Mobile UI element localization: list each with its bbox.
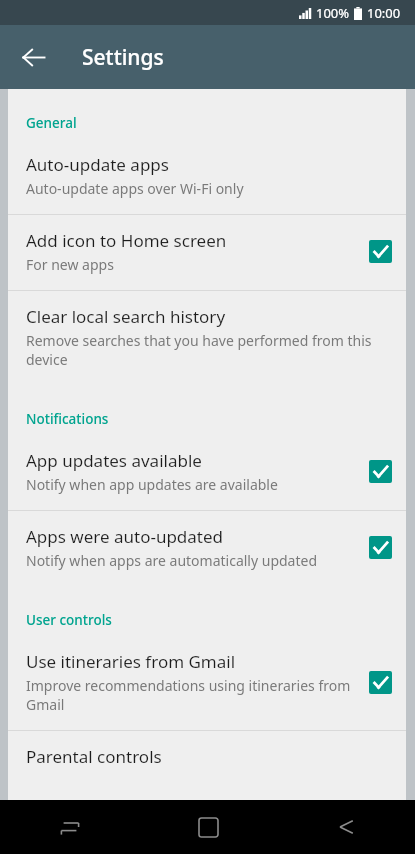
staticText: Auto-update apps	[26, 153, 169, 176]
staticText: Use itineraries from Gmail	[26, 650, 236, 673]
staticText: Settings	[82, 43, 164, 72]
staticText: Parental controls	[26, 745, 162, 768]
staticText: Add icon to Home screen	[26, 229, 227, 252]
staticText: For new apps	[26, 255, 114, 274]
staticText: User controls	[26, 611, 112, 629]
button[interactable]: Clear local search history	[8, 291, 406, 385]
button[interactable]: Auto-update apps	[8, 139, 406, 214]
button[interactable]: Back	[11, 35, 55, 79]
button[interactable]: Recents	[0, 800, 139, 854]
staticText: Notify when apps are automatically updat…	[26, 551, 318, 570]
staticText: Remove searches that you have performed …	[26, 331, 392, 369]
button[interactable]: Add icon to Home screen	[8, 215, 406, 290]
staticText: Notify when app updates are available	[26, 475, 278, 494]
staticText: 10:00	[367, 4, 401, 22]
button[interactable]: Home	[139, 800, 277, 854]
button[interactable]: Apps were auto-updated	[8, 511, 406, 586]
staticText: Auto-update apps over Wi-Fi only	[26, 179, 244, 198]
button[interactable]: Back	[277, 800, 415, 854]
staticText: Improve recommendations using itinerarie…	[26, 676, 359, 714]
button[interactable]: Use itineraries from Gmail	[8, 636, 406, 730]
staticText: 100%	[316, 4, 350, 22]
button[interactable]: Parental controls	[8, 731, 406, 784]
staticText: Apps were auto-updated	[26, 525, 224, 548]
staticText: App updates available	[26, 449, 202, 472]
button[interactable]: App updates available	[8, 435, 406, 510]
staticText: Clear local search history	[26, 305, 226, 328]
staticText: Notifications	[26, 410, 109, 428]
staticText: General	[26, 114, 77, 132]
